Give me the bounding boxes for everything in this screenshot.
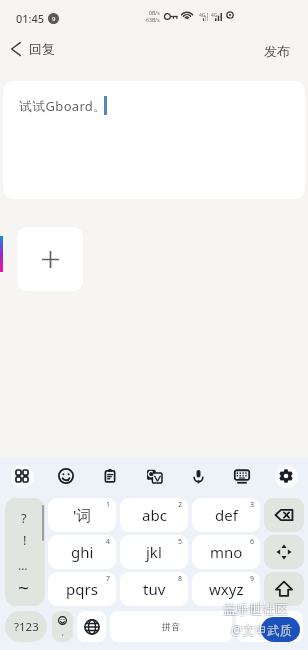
staticText: @文申武质 [230, 623, 292, 640]
staticText: ghi [71, 542, 94, 562]
button[interactable]: Voice input [176, 458, 220, 494]
staticText: 2 [178, 500, 183, 510]
staticText: @文申武质 [232, 621, 294, 638]
button[interactable]: Emoji [52, 611, 73, 642]
button[interactable]: 拼音 [110, 611, 232, 642]
staticText: … [18, 557, 28, 573]
button[interactable]: ?123 [5, 611, 47, 642]
staticText: 4G [199, 12, 206, 19]
button[interactable]: Emoji [44, 458, 88, 494]
staticText: 0B/s [149, 9, 160, 16]
staticText: 3 [250, 500, 255, 510]
staticText: ~ [18, 575, 29, 601]
button[interactable]: Add image [17, 227, 83, 291]
button[interactable]: 试试Gboard。 [3, 81, 305, 199]
staticText: @文申武质 [231, 622, 293, 639]
staticText: 7 [106, 574, 111, 584]
button[interactable]: jkl [120, 535, 188, 569]
staticText: jkl [146, 542, 162, 562]
button[interactable]: Enter [236, 611, 303, 642]
staticText: @文申武质 [230, 621, 292, 638]
staticText: 5 [178, 537, 183, 547]
staticText: 盖乐世社区 [222, 600, 287, 616]
button[interactable]: Settings [264, 458, 308, 494]
button[interactable]: 发布 [246, 35, 308, 67]
staticText: , [62, 628, 64, 638]
staticText: 试试Gboard。 [19, 97, 107, 115]
staticText: 4G [211, 12, 218, 19]
staticText: 8 [178, 574, 183, 584]
staticText: abc [142, 505, 167, 525]
button[interactable]: tuv [120, 572, 188, 606]
staticText: '词 [73, 505, 92, 525]
staticText: pqrs [66, 579, 98, 599]
button[interactable]: ghi [48, 535, 116, 569]
staticText: 63B/s [146, 16, 160, 23]
button[interactable]: Apps [0, 458, 44, 494]
button[interactable]: wxyz [192, 572, 260, 606]
staticText: 01:45 [16, 11, 45, 26]
staticText: @文申武质 [232, 623, 294, 640]
button[interactable]: '词 [48, 498, 116, 532]
staticText: def [215, 505, 238, 525]
staticText: wxyz [209, 579, 244, 599]
button[interactable]: Keyboard mode [220, 458, 264, 494]
staticText: 盖乐世社区 [224, 600, 289, 616]
staticText: 4 [106, 537, 111, 547]
button[interactable]: Translate [132, 458, 176, 494]
staticText: 拼音 [162, 621, 180, 632]
staticText: 1 [106, 500, 111, 510]
staticText: ! [23, 531, 27, 549]
staticText: 6 [250, 537, 255, 547]
button[interactable]: mno [192, 535, 260, 569]
button[interactable]: pqrs [48, 572, 116, 606]
staticText: 发布 [264, 43, 290, 59]
staticText: tuv [143, 579, 166, 599]
button[interactable]: Clipboard [88, 458, 132, 494]
staticText: ? [21, 509, 27, 527]
button[interactable]: Move cursor [264, 535, 304, 569]
staticText: 回复 [29, 41, 55, 57]
button[interactable]: Backspace [264, 498, 304, 532]
button[interactable]: Back [5, 36, 61, 62]
staticText: ?123 [14, 619, 39, 635]
staticText: 盖乐世社区 [223, 601, 288, 617]
button[interactable]: ? [5, 498, 45, 606]
staticText: 盖乐世社区 [222, 602, 287, 618]
staticText: 9 [52, 15, 56, 23]
button[interactable]: abc [120, 498, 188, 532]
button[interactable]: Change language [77, 611, 106, 642]
other: Back [11, 42, 21, 56]
staticText: 9 [250, 574, 255, 584]
button[interactable]: Shift [264, 572, 304, 606]
button[interactable]: def [192, 498, 260, 532]
staticText: mno [210, 542, 243, 562]
staticText: 盖乐世社区 [224, 602, 289, 618]
